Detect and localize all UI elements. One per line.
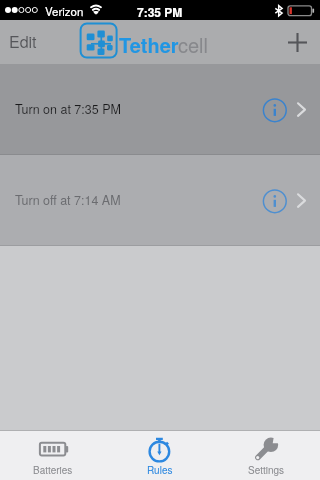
button[interactable]: More info xyxy=(262,189,288,215)
staticText: Rules xyxy=(147,463,173,477)
button[interactable]: Settings xyxy=(213,431,320,480)
button[interactable]: More info xyxy=(262,98,288,124)
button[interactable]: Edit xyxy=(0,20,49,64)
staticText: Verizon xyxy=(45,3,84,19)
staticText: cell xyxy=(178,30,208,59)
button[interactable]: Add rule xyxy=(275,22,320,63)
staticText: Turn on at 7:35 PM xyxy=(15,100,121,118)
staticText: Edit xyxy=(9,30,37,52)
staticText: Tether xyxy=(119,30,179,59)
staticText: Settings xyxy=(248,463,285,477)
button[interactable]: Rules xyxy=(106,431,213,480)
staticText: 7:35 PM xyxy=(137,3,183,20)
staticText: Batteries xyxy=(33,463,73,477)
button[interactable]: Turn off at 7:14 AM xyxy=(0,155,320,245)
button[interactable]: Batteries xyxy=(0,431,106,480)
button[interactable]: Turn on at 7:35 PM xyxy=(0,64,320,154)
staticText: Turn off at 7:14 AM xyxy=(15,191,121,209)
